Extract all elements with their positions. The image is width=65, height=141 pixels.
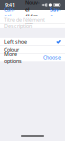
staticText: Colour: [4, 46, 19, 53]
button[interactable]: More options: [0, 54, 65, 61]
staticText: Choose: [43, 54, 61, 61]
staticText: 9:41: [5, 1, 15, 9]
button[interactable]: Save: [48, 5, 63, 21]
button[interactable]: Left shoe: [0, 38, 65, 45]
staticText: Nouvel élément: [25, 0, 40, 27]
button[interactable]: Cancel: [2, 5, 17, 21]
staticText: Save: [50, 6, 61, 20]
button[interactable]: Colour: [0, 46, 65, 53]
staticText: Description: [4, 22, 32, 29]
staticText: Left shoe: [4, 38, 27, 45]
staticText: Titre de l'élément: [4, 16, 45, 23]
staticText: More options: [4, 50, 22, 65]
staticText: Cancel: [4, 6, 15, 20]
